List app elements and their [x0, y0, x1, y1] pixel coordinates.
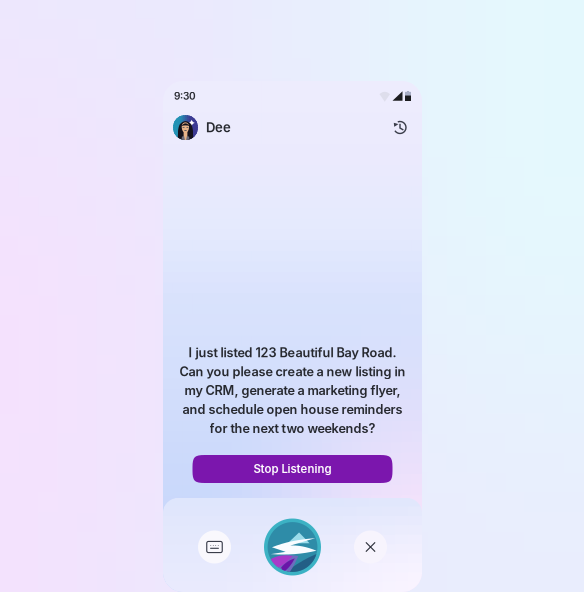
staticText: 9:30 — [174, 90, 196, 102]
staticText: for the next two weekends? — [209, 421, 375, 436]
button[interactable]: Keyboard — [198, 530, 231, 563]
button[interactable]: Close — [354, 530, 387, 563]
staticText: my CRM, generate a marketing flyer, — [184, 383, 400, 398]
button[interactable]: History — [388, 115, 412, 139]
staticText: and schedule open house reminders — [182, 402, 402, 417]
staticText: Stop Listening — [253, 462, 331, 476]
staticText: Dee — [206, 120, 231, 135]
button[interactable]: Stop Listening — [192, 455, 392, 483]
staticText: I just listed 123 Beautiful Bay Road. — [188, 345, 396, 360]
button[interactable]: Siri — [264, 518, 321, 575]
staticText: Can you please create a new listing in — [179, 364, 405, 379]
